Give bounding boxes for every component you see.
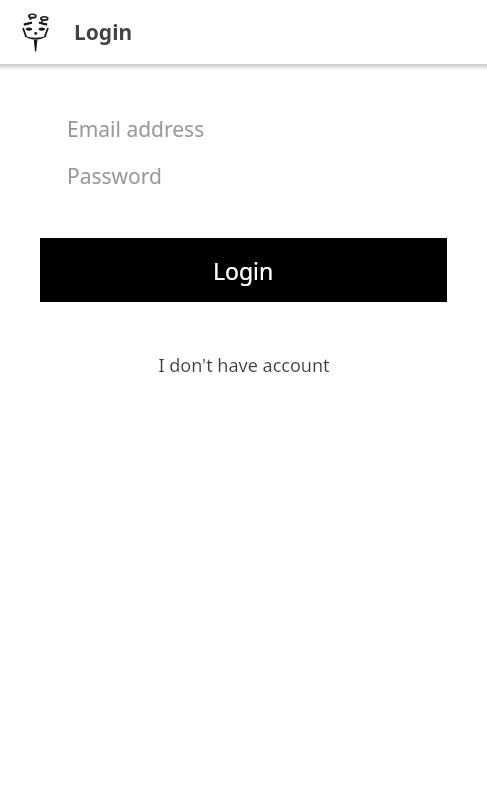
staticText: I don't have account (158, 353, 330, 378)
staticText: Login (213, 255, 274, 286)
staticText: Password (67, 162, 162, 191)
button[interactable]: Login (40, 238, 447, 302)
button[interactable]: Email address (40, 109, 447, 149)
button[interactable]: I don't have account (0, 348, 487, 382)
staticText: Email address (67, 115, 205, 144)
button[interactable]: Password (40, 156, 447, 196)
other: App logo (16, 12, 56, 52)
staticText: Login (74, 18, 133, 47)
